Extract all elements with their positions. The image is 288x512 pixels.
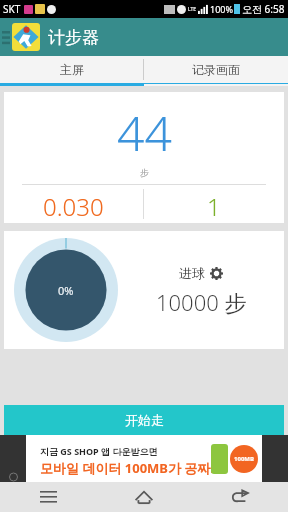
staticText: 记录画面 bbox=[192, 62, 240, 77]
button[interactable]: 记录画面 bbox=[144, 56, 288, 83]
button[interactable]: 开始走 bbox=[4, 405, 284, 435]
button[interactable]: 主屏 bbox=[0, 56, 143, 83]
staticText: 步 bbox=[140, 167, 149, 178]
staticText: SKT bbox=[3, 2, 21, 16]
staticText: 主屏 bbox=[60, 62, 84, 77]
staticText: 100% bbox=[210, 3, 233, 15]
staticText: 计步器 bbox=[48, 27, 99, 48]
staticText: 모바일 데이터 100MB가 공짜! bbox=[40, 459, 215, 477]
button[interactable]: Menu bbox=[0, 482, 96, 512]
staticText: 10000 步 bbox=[156, 287, 247, 317]
other: Settings bbox=[210, 267, 223, 280]
staticText: 进球 bbox=[179, 265, 205, 281]
staticText: 지금 GS SHOP 앱 다운받으면 bbox=[40, 445, 158, 457]
button[interactable]: 지금 GS SHOP 앱 다운받으면 bbox=[26, 435, 262, 482]
staticText: 44 bbox=[117, 100, 172, 165]
staticText: 100MB bbox=[234, 455, 254, 463]
button[interactable]: 进球 bbox=[177, 263, 225, 283]
staticText: 开始走 bbox=[125, 412, 164, 428]
staticText: 0% bbox=[58, 283, 74, 298]
staticText: 오전 6:58 bbox=[242, 2, 285, 16]
button[interactable]: Back bbox=[192, 482, 288, 512]
staticText: 0.030 bbox=[43, 190, 104, 223]
staticText: 1 bbox=[207, 190, 221, 223]
button[interactable]: Home bbox=[96, 482, 192, 512]
staticText: LTE bbox=[188, 6, 197, 13]
